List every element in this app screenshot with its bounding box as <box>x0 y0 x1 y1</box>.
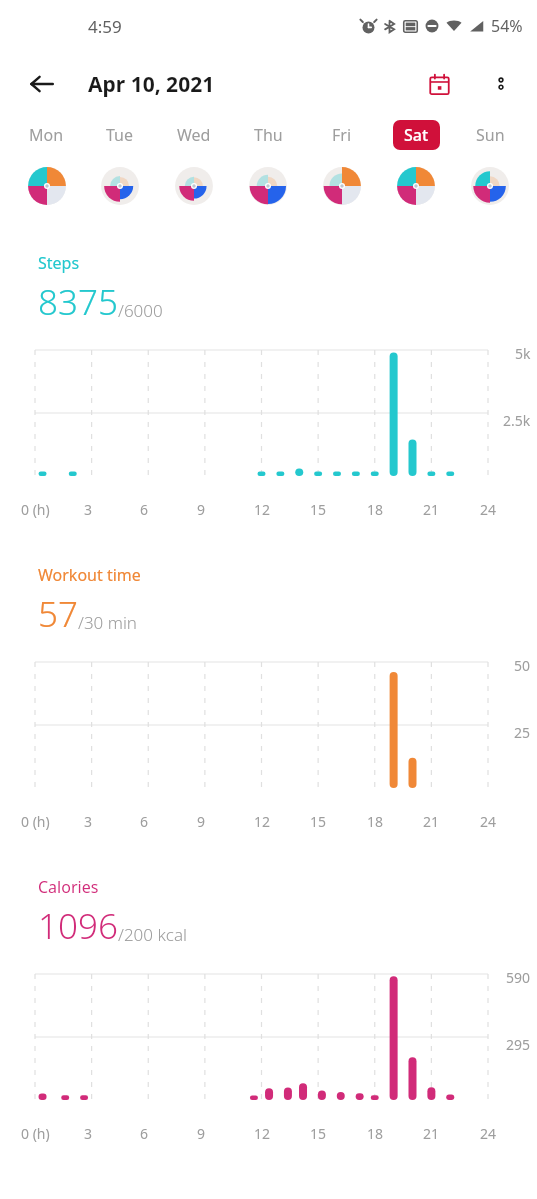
staticText: 0 (h) <box>21 500 65 519</box>
staticText: /6000 <box>118 299 163 322</box>
button[interactable]: Mon <box>10 116 83 212</box>
staticText: Calories <box>38 876 99 898</box>
staticText: 8375 <box>38 278 118 326</box>
staticText: 3 <box>84 1124 128 1143</box>
staticText: 0 (h) <box>21 812 65 831</box>
button[interactable]: Steps <box>0 252 537 522</box>
button[interactable]: Sun <box>453 116 527 212</box>
staticText: Fri <box>332 124 352 146</box>
staticText: 9 <box>197 812 241 831</box>
staticText: 57 <box>38 590 78 638</box>
staticText: Sat <box>404 124 429 146</box>
staticText: 12 <box>254 1124 298 1143</box>
button[interactable]: Back <box>20 62 64 106</box>
staticText: Steps <box>38 252 80 274</box>
staticText: 6 <box>140 500 184 519</box>
staticText: Sun <box>476 124 505 146</box>
staticText: 590 <box>506 968 531 987</box>
staticText: 25 <box>514 723 531 742</box>
staticText: Tue <box>106 124 134 146</box>
staticText: 24 <box>480 812 524 831</box>
staticText: 24 <box>480 500 524 519</box>
staticText: 50 <box>514 656 531 675</box>
staticText: 295 <box>506 1035 531 1054</box>
staticText: 12 <box>254 812 298 831</box>
staticText: 3 <box>84 500 128 519</box>
staticText: Thu <box>254 124 283 146</box>
staticText: 2.5k <box>503 411 531 430</box>
staticText: 21 <box>423 1124 467 1143</box>
staticText: 18 <box>367 812 411 831</box>
staticText: Wed <box>177 124 211 146</box>
button[interactable]: Calories <box>0 876 537 1146</box>
staticText: 18 <box>367 1124 411 1143</box>
button[interactable]: Calendar <box>417 62 461 106</box>
staticText: 1096 <box>38 902 118 950</box>
staticText: /30 min <box>78 611 137 634</box>
staticText: 15 <box>310 1124 354 1143</box>
button[interactable]: More options <box>479 62 523 106</box>
staticText: /200 kcal <box>118 923 187 946</box>
staticText: 21 <box>423 812 467 831</box>
staticText: Apr 10, 2021 <box>88 70 215 99</box>
staticText: 3 <box>84 812 128 831</box>
button[interactable]: Tue <box>83 116 157 212</box>
button[interactable]: Fri <box>305 116 379 212</box>
button[interactable]: Workout time <box>0 564 537 834</box>
staticText: 6 <box>140 1124 184 1143</box>
staticText: 0 (h) <box>21 1124 65 1143</box>
staticText: 21 <box>423 500 467 519</box>
staticText: 15 <box>310 812 354 831</box>
staticText: 9 <box>197 500 241 519</box>
staticText: 18 <box>367 500 411 519</box>
staticText: 4:59 <box>88 15 122 38</box>
staticText: Workout time <box>38 564 141 586</box>
staticText: 9 <box>197 1124 241 1143</box>
staticText: 24 <box>480 1124 524 1143</box>
button[interactable]: Wed <box>157 116 231 212</box>
staticText: 54% <box>491 15 523 37</box>
staticText: Mon <box>29 124 64 146</box>
button[interactable]: Thu <box>231 116 305 212</box>
staticText: 12 <box>254 500 298 519</box>
staticText: 5k <box>515 344 531 363</box>
staticText: 6 <box>140 812 184 831</box>
staticText: 15 <box>310 500 354 519</box>
button[interactable]: Sat <box>379 116 453 212</box>
